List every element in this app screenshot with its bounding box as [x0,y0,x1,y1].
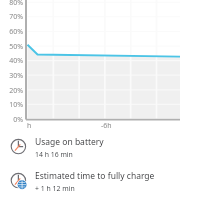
staticText: 30% [0,71,23,81]
staticText: Estimated time to fully charge [35,170,155,182]
button[interactable]: Battery usage time [0,130,200,164]
other: Charging time [10,173,26,189]
button[interactable]: Charging time [0,164,200,198]
staticText: 20% [0,86,23,96]
staticText: h [27,121,32,131]
staticText: Usage on battery [35,136,104,148]
staticText: -6h [101,121,112,131]
staticText: 70% [0,12,23,22]
staticText: 60% [0,27,23,37]
staticText: 10% [0,100,23,110]
staticText: 0% [0,115,23,125]
other: Battery usage time [10,139,26,155]
staticText: 14 h 16 min [35,150,73,159]
staticText: 40% [0,56,23,66]
staticText: 50% [0,42,23,52]
staticText: + 1 h 12 min [35,184,75,193]
staticText: 80% [0,0,23,8]
